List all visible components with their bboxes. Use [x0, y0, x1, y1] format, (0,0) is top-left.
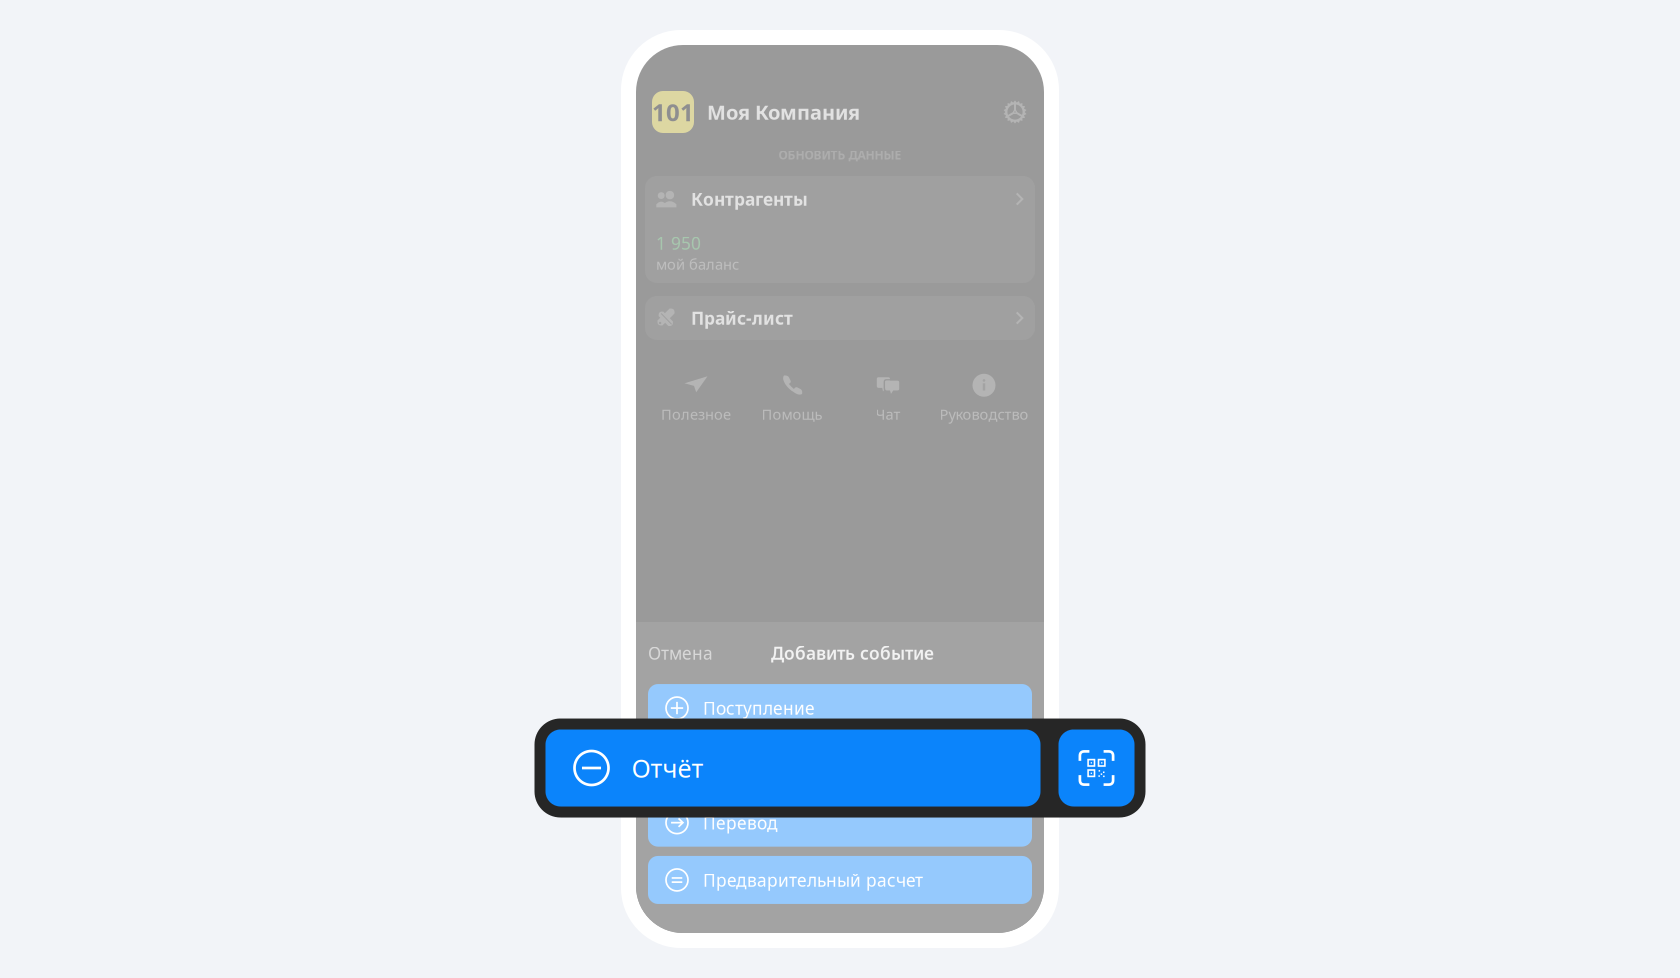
button[interactable]: Полезное: [648, 374, 744, 422]
staticText: Добавить событие: [771, 641, 934, 664]
staticText: Прайс-лист: [691, 306, 793, 329]
staticText: Чат: [875, 404, 900, 424]
staticText: Моя Компания: [707, 99, 860, 125]
staticText: Перевод: [703, 811, 778, 834]
staticText: Поступление: [703, 696, 815, 719]
button[interactable]: Прайс-лист: [645, 296, 1035, 340]
button[interactable]: Руководство: [936, 374, 1032, 422]
staticText: 1 950: [656, 231, 701, 254]
button[interactable]: Контрагенты: [645, 176, 1035, 222]
staticText: Предварительный расчет: [703, 868, 923, 891]
staticText: ОБНОВИТЬ ДАННЫЕ: [778, 147, 901, 163]
staticText: Отчёт: [631, 751, 703, 785]
button[interactable]: Предварительный расчет: [648, 856, 1032, 904]
button[interactable]: Поступление: [648, 684, 1032, 732]
button[interactable]: Настройки: [1002, 99, 1028, 125]
button[interactable]: Расход: [648, 741, 1032, 789]
button[interactable]: Сканировать QR-код: [1058, 729, 1134, 806]
button[interactable]: Перевод: [648, 799, 1032, 847]
staticText: Контрагенты: [691, 187, 808, 210]
staticText: Помощь: [761, 404, 822, 424]
staticText: Полезное: [661, 404, 731, 424]
button[interactable]: Отчёт: [545, 729, 1040, 806]
staticText: мой баланс: [656, 254, 739, 274]
button[interactable]: Чат: [840, 374, 936, 422]
staticText: Отмена: [648, 641, 713, 664]
button[interactable]: Помощь: [744, 374, 840, 422]
button[interactable]: Отмена: [648, 641, 713, 664]
staticText: 101: [652, 96, 694, 128]
staticText: Руководство: [939, 404, 1028, 424]
button[interactable]: ОБНОВИТЬ ДАННЫЕ: [636, 147, 1044, 176]
